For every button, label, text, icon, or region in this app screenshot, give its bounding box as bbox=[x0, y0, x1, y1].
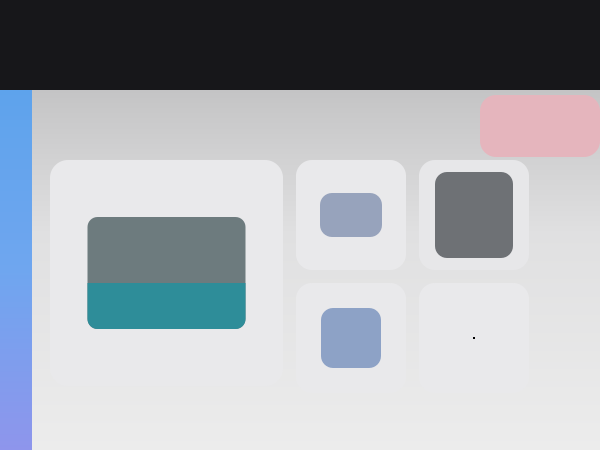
button[interactable] bbox=[419, 160, 529, 270]
button[interactable] bbox=[419, 283, 529, 393]
button[interactable] bbox=[50, 160, 283, 386]
button[interactable] bbox=[296, 160, 406, 270]
button[interactable] bbox=[296, 283, 406, 393]
